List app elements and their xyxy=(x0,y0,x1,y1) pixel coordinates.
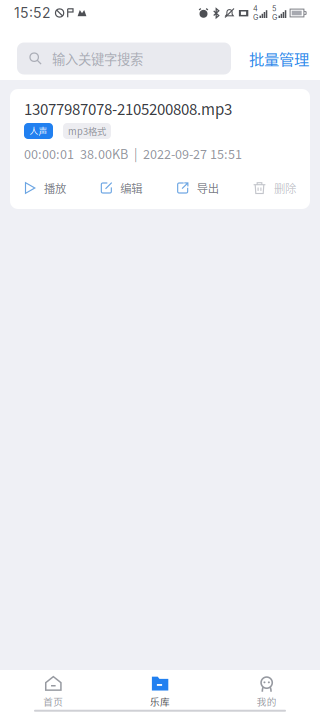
staticText: 4G xyxy=(253,4,258,22)
staticText: 00:00:01 38.00KB | 2022-09-27 15:51 xyxy=(24,144,242,163)
staticText: 批量管理 xyxy=(249,47,309,70)
button[interactable]: 乐库 xyxy=(107,670,213,710)
staticText: 13077987078-2105200808.mp3 xyxy=(24,98,232,119)
staticText: 15:52 xyxy=(14,4,51,21)
staticText: 我的 xyxy=(257,694,277,708)
staticText: 删除 xyxy=(274,180,296,196)
button[interactable]: 首页 xyxy=(0,670,107,710)
button[interactable]: 删除 xyxy=(253,176,296,200)
staticText: 5G xyxy=(272,4,277,22)
button[interactable]: 导出 xyxy=(177,176,219,200)
staticText: 人声 xyxy=(29,125,47,137)
staticText: 播放 xyxy=(44,180,66,196)
button[interactable]: 批量管理 xyxy=(247,42,311,74)
button[interactable]: 播放 xyxy=(24,176,66,200)
staticText: 输入关键字搜索 xyxy=(52,49,143,68)
staticText: 导出 xyxy=(197,180,219,196)
staticText: mp3格式 xyxy=(68,124,106,138)
button[interactable]: 编辑 xyxy=(100,176,142,200)
button[interactable]: 我的 xyxy=(213,670,320,710)
staticText: 首页 xyxy=(43,694,63,708)
staticText: 乐库 xyxy=(150,694,170,708)
staticText: 编辑 xyxy=(120,180,142,196)
